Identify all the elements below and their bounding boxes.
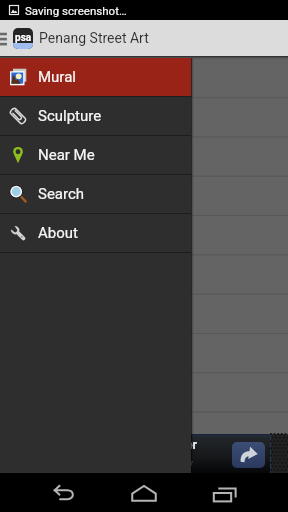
staticText: psa [15, 32, 32, 44]
button[interactable]: About [0, 214, 191, 252]
button[interactable]: Near Me [0, 136, 191, 174]
staticText: About [38, 224, 78, 242]
button[interactable]: Share [232, 442, 265, 468]
button[interactable]: Sculpture [0, 97, 191, 135]
button[interactable]: Search [0, 175, 191, 213]
staticText: er [186, 438, 197, 452]
button[interactable]: Open navigation drawer [0, 27, 10, 49]
button[interactable]: Recents [193, 473, 257, 512]
button[interactable]: Mural [0, 58, 191, 96]
button[interactable]: Home [112, 473, 176, 512]
staticText: Search [38, 185, 85, 203]
staticText: Penang Street Art [39, 30, 149, 46]
staticText: Mural [38, 68, 76, 86]
staticText: Near Me [38, 146, 95, 164]
button[interactable]: Back [32, 473, 96, 512]
staticText: Sculpture [38, 107, 102, 125]
staticText: Saving screenshot… [25, 4, 127, 17]
staticText: w [186, 458, 193, 469]
